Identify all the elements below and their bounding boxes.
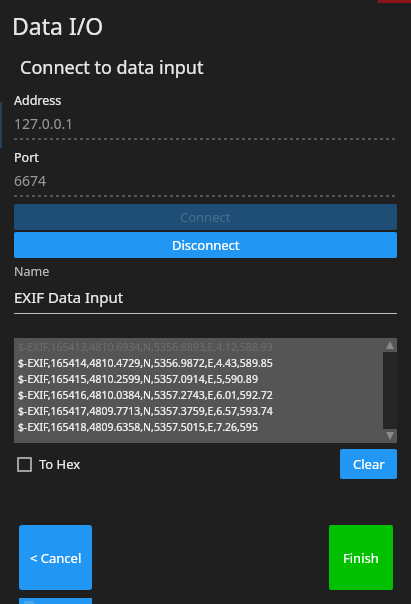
button[interactable]: Connect	[14, 204, 397, 230]
staticText: Connect to data input	[20, 55, 204, 80]
staticText: To Hex	[39, 455, 81, 473]
button[interactable]: Finish	[329, 525, 393, 590]
staticText: Data I/O	[12, 10, 104, 41]
button[interactable]: 127.0.0.1	[14, 114, 397, 133]
staticText: $-EXIF,165415,4810.2599,N,5357.0914,E,5,…	[18, 372, 258, 386]
staticText: Disconnect	[172, 236, 240, 254]
staticText: $-EXIF,165418,4809.6358,N,5357.5015,E,7.…	[18, 420, 258, 434]
staticText: Finish	[343, 549, 379, 567]
staticText: EXIF Data Input	[14, 287, 124, 307]
button[interactable]: < Cancel	[19, 525, 92, 590]
button[interactable]: EXIF Data Input	[14, 287, 397, 307]
staticText: 127.0.0.1	[14, 114, 74, 133]
button[interactable]: Scroll down	[383, 429, 397, 443]
button[interactable]: Scroll up	[383, 338, 397, 352]
staticText: Name	[14, 263, 50, 280]
staticText: Connect	[180, 208, 231, 226]
staticText: $-EXIF,165414,4810.4729,N,5356.9872,E,4.…	[18, 356, 273, 370]
staticText: $-EXIF,165417,4809.7713,N,5357.3759,E,6.…	[18, 404, 273, 418]
staticText: $-EXIF,165416,4810.0384,N,5357.2743,E,6.…	[18, 388, 273, 402]
staticText: 6674	[14, 171, 47, 190]
button[interactable]: Clear	[340, 449, 397, 479]
staticText: Address	[14, 92, 62, 109]
staticText: $-EXIF,165413,4810.6934,N,5356.8893,E,4.…	[18, 340, 273, 354]
staticText: < Cancel	[30, 549, 82, 567]
button[interactable]: To Hex	[18, 455, 81, 473]
staticText: Port	[14, 149, 39, 166]
button[interactable]: 6674	[14, 171, 397, 190]
button[interactable]: Disconnect	[14, 232, 397, 258]
staticText: Clear	[353, 455, 385, 473]
